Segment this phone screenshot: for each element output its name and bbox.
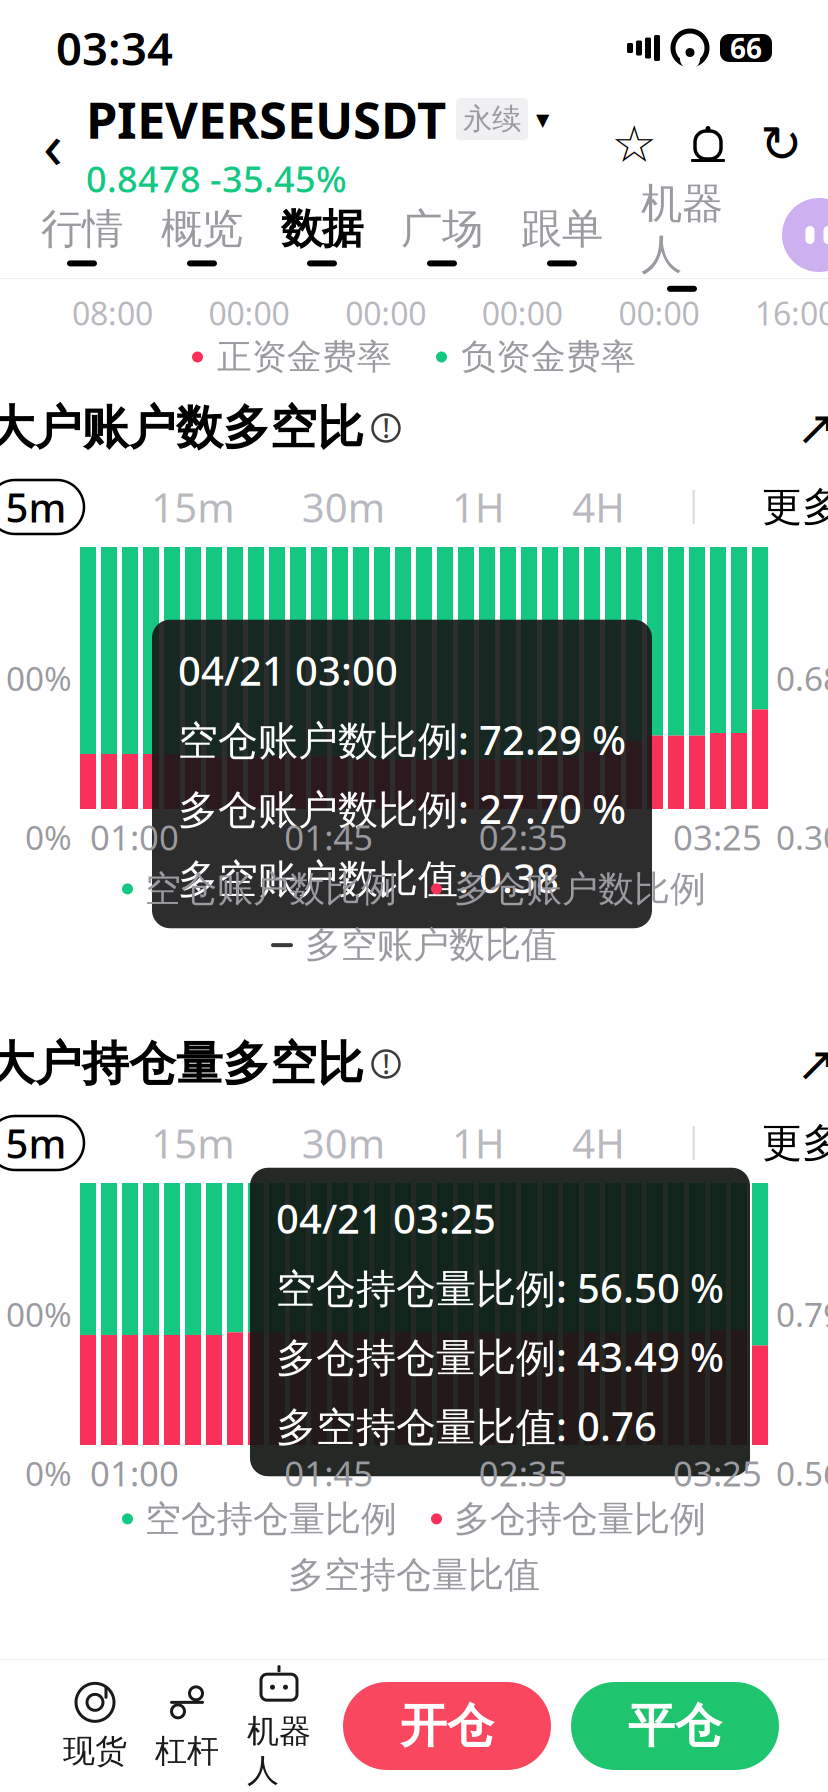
button[interactable]: 概览: [142, 192, 262, 278]
staticText: 01:00: [90, 1450, 179, 1496]
button[interactable]: 数据: [262, 192, 382, 278]
staticText: ↗: [796, 401, 828, 455]
staticText: 15m: [151, 1116, 234, 1169]
staticText: 数据: [281, 204, 363, 254]
button[interactable]: Alerts: [688, 120, 728, 168]
staticText: 概览: [161, 204, 243, 254]
staticText: 01:45: [284, 1450, 373, 1496]
staticText: 0.79: [776, 1292, 828, 1336]
button[interactable]: 5m: [0, 1116, 84, 1170]
staticText: 机器人: [641, 178, 723, 280]
staticText: 行情: [41, 204, 123, 254]
staticText: ↻: [760, 115, 802, 173]
staticText: 开仓: [400, 1697, 494, 1755]
staticText: PIEVERSEUSDT: [86, 85, 446, 153]
staticText: 负资金费率: [461, 336, 636, 378]
staticText: 0.8478 -35.45%: [86, 155, 347, 202]
button[interactable]: 平仓: [571, 1682, 779, 1770]
staticText: 0%: [25, 1451, 72, 1495]
button[interactable]: 跟单: [502, 192, 622, 278]
staticText: 0.56: [776, 1451, 828, 1495]
button[interactable]: 15m: [151, 1116, 234, 1170]
staticText: 多仓持仓量比例: 43.49 %: [276, 1330, 724, 1383]
staticText: 多仓持仓量比例: [454, 1497, 706, 1541]
button[interactable]: 开仓: [343, 1682, 551, 1770]
staticText: ‹: [43, 101, 63, 186]
staticText: 跟单: [521, 204, 603, 254]
button[interactable]: Share: [760, 120, 802, 168]
staticText: 更多: [762, 1118, 828, 1167]
button[interactable]: 1H: [452, 1116, 505, 1170]
button[interactable]: 机器人: [233, 1674, 325, 1778]
button[interactable]: Info: [364, 1042, 408, 1086]
staticText: 66: [730, 29, 762, 67]
staticText: 16:00: [755, 292, 828, 334]
staticText: 多空账户数比值: [305, 923, 557, 967]
button[interactable]: 30m: [302, 480, 385, 534]
staticText: 多空持仓量比值: 0.76: [276, 1399, 657, 1452]
staticText: 100%: [0, 656, 72, 700]
button[interactable]: 行情: [22, 192, 142, 278]
staticText: 现货: [63, 1731, 127, 1771]
staticText: 5m: [5, 480, 66, 533]
staticText: 机器人: [247, 1712, 311, 1790]
staticText: 30m: [302, 1116, 385, 1169]
button[interactable]: 广场: [382, 192, 502, 278]
button[interactable]: 更多: [762, 1116, 828, 1170]
staticText: 0.30: [776, 815, 828, 859]
staticText: 平仓: [628, 1697, 722, 1755]
staticText: 00:00: [209, 292, 290, 334]
staticText: 大户持仓量多空比: [0, 1035, 364, 1093]
staticText: 03:25: [673, 1450, 762, 1496]
staticText: 1H: [452, 480, 505, 533]
staticText: 多仓账户数比例: 27.70 %: [178, 782, 626, 835]
staticText: 02:35: [479, 814, 568, 860]
staticText: 04/21 03:25: [276, 1192, 496, 1245]
staticText: 30m: [302, 480, 385, 533]
button[interactable]: Back: [26, 107, 80, 181]
button[interactable]: 杠杆: [141, 1674, 233, 1778]
button[interactable]: 15m: [151, 480, 234, 534]
staticText: 0.68: [776, 656, 828, 700]
staticText: 杠杆: [155, 1731, 219, 1771]
staticText: 4H: [572, 1116, 625, 1169]
staticText: 4H: [572, 480, 625, 533]
staticText: 03:34: [56, 18, 173, 78]
button[interactable]: 5m: [0, 480, 84, 534]
staticText: 02:35: [479, 1450, 568, 1496]
staticText: 空仓持仓量比例: [145, 1497, 397, 1541]
staticText: 5m: [5, 1116, 66, 1169]
button[interactable]: 现货: [49, 1674, 141, 1778]
staticText: 多仓账户数比例: [454, 867, 706, 911]
staticText: 空仓账户数比例: 72.29 %: [178, 713, 626, 766]
staticText: 0%: [25, 815, 72, 859]
button[interactable]: 4H: [572, 1116, 625, 1170]
button[interactable]: 30m: [302, 1116, 385, 1170]
button[interactable]: Favorite: [612, 120, 656, 168]
staticText: 04/21 03:00: [178, 644, 398, 697]
button[interactable]: 1H: [452, 480, 505, 534]
staticText: 00:00: [618, 292, 699, 334]
button[interactable]: Open chart: [792, 1040, 828, 1088]
staticText: 01:00: [90, 814, 179, 860]
button[interactable]: Info: [364, 406, 408, 450]
staticText: ☆: [611, 115, 656, 173]
button[interactable]: Open chart: [792, 404, 828, 452]
staticText: 永续: [463, 101, 521, 137]
staticText: 大户账户数多空比: [0, 399, 364, 457]
staticText: 更多: [762, 482, 828, 531]
button[interactable]: 4H: [572, 480, 625, 534]
staticText: 空仓持仓量比例: 56.50 %: [276, 1261, 724, 1314]
staticText: 100%: [0, 1292, 72, 1336]
button[interactable]: 机器人: [622, 192, 742, 278]
staticText: 01:45: [284, 814, 373, 860]
staticText: 空仓账户数比例: [145, 867, 397, 911]
staticText: 正资金费率: [217, 336, 392, 378]
button[interactable]: 更多: [762, 480, 828, 534]
staticText: 广场: [401, 204, 483, 254]
staticText: !: [382, 410, 389, 446]
staticText: !: [382, 1046, 389, 1082]
staticText: 1H: [452, 1116, 505, 1169]
button[interactable]: 永续: [456, 98, 549, 140]
staticText: 00:00: [345, 292, 426, 334]
